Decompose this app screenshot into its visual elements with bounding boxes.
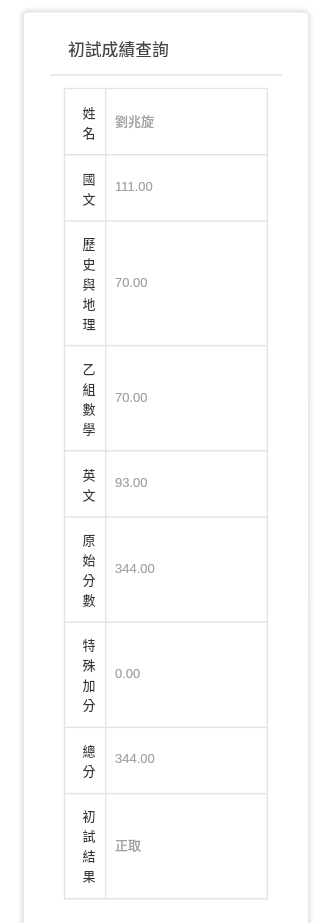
- staticText: 0.00: [115, 666, 141, 681]
- button[interactable]: 姓名: [64, 89, 268, 154]
- button[interactable]: 初試成績查詢: [68, 37, 169, 57]
- button[interactable]: 歷史與地理: [64, 221, 268, 345]
- staticText: 344.00: [115, 751, 155, 766]
- button[interactable]: 乙組數學: [64, 346, 268, 450]
- staticText: 111.00: [115, 179, 153, 194]
- staticText: 初試結果: [82, 806, 96, 884]
- staticText: 乙組數學: [82, 359, 96, 437]
- staticText: 344.00: [115, 561, 155, 576]
- staticText: 英文: [82, 465, 96, 503]
- staticText: 劉兆旋: [115, 111, 155, 130]
- staticText: 總分: [82, 741, 96, 779]
- button[interactable]: 特殊加分: [64, 622, 268, 726]
- button[interactable]: 國文: [64, 155, 268, 220]
- button[interactable]: 初試結果: [64, 793, 268, 897]
- staticText: 歷史與地理: [82, 234, 96, 332]
- button[interactable]: 英文: [64, 451, 268, 516]
- staticText: 姓名: [82, 103, 96, 141]
- staticText: 國文: [82, 169, 96, 207]
- staticText: 初試成績查詢: [68, 37, 169, 57]
- staticText: 93.00: [115, 475, 148, 490]
- button[interactable]: 總分: [64, 727, 268, 792]
- staticText: 原始分數: [82, 530, 96, 608]
- staticText: 70.00: [115, 275, 148, 290]
- button[interactable]: 原始分數: [64, 517, 268, 621]
- staticText: 正取: [115, 835, 142, 854]
- staticText: 特殊加分: [82, 635, 96, 713]
- staticText: 70.00: [115, 390, 148, 405]
